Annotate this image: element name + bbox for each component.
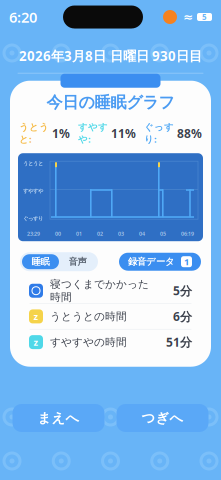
staticText: 5 [202, 12, 207, 22]
staticText: 5分 [173, 283, 192, 299]
staticText: ぐっすり [23, 215, 43, 222]
staticText: 6分 [173, 308, 192, 324]
staticText: 02 [97, 230, 103, 237]
staticText: すやすや [23, 188, 43, 194]
staticText: つぎへ [141, 410, 183, 426]
staticText: うとうとの時間 [50, 310, 127, 323]
staticText: まえへ [37, 410, 79, 426]
staticText: ≈ [183, 10, 193, 24]
staticText: 06:19 [181, 230, 194, 237]
button[interactable]: z [20, 304, 201, 329]
button[interactable]: 音声 [59, 254, 96, 269]
staticText: 6:20 [9, 7, 37, 27]
staticText: 00 [55, 230, 61, 237]
staticText: 04 [139, 230, 145, 237]
staticText: ぐっすり: [144, 121, 174, 145]
staticText: 1 [184, 255, 189, 268]
button[interactable]: つぎへ [116, 404, 208, 432]
staticText: うとうと [23, 160, 43, 167]
staticText: 23:29 [27, 230, 40, 237]
staticText: z [33, 310, 38, 323]
staticText: 03 [118, 230, 124, 237]
staticText: すやすや: [78, 121, 108, 145]
staticText: 88% [174, 125, 202, 141]
button[interactable]: 睡眠 [22, 254, 59, 269]
staticText: 2026年3月8日 日曜日 930日目 [19, 47, 202, 65]
button[interactable]: 録音データ [119, 253, 201, 271]
staticText: 今日の睡眠グラフ [46, 93, 174, 112]
staticText: 睡眠 [31, 256, 49, 267]
staticText: 録音データ [128, 256, 175, 267]
staticText: 1% [49, 125, 70, 141]
staticText: すやすやの時間 [50, 336, 127, 349]
staticText: 01 [76, 230, 82, 237]
staticText: 51分 [166, 334, 192, 350]
staticText: z [33, 336, 38, 348]
staticText: 寝つくまでかかった時間 [50, 278, 149, 304]
staticText: 音声 [68, 256, 86, 267]
button[interactable]: まえへ [12, 404, 104, 432]
button[interactable]: 寝つくまでかかった時間 [20, 278, 201, 303]
staticText: うとうと: [19, 121, 49, 145]
button[interactable]: z [20, 330, 201, 355]
staticText: 11% [108, 125, 136, 141]
staticText: 05 [160, 230, 166, 237]
